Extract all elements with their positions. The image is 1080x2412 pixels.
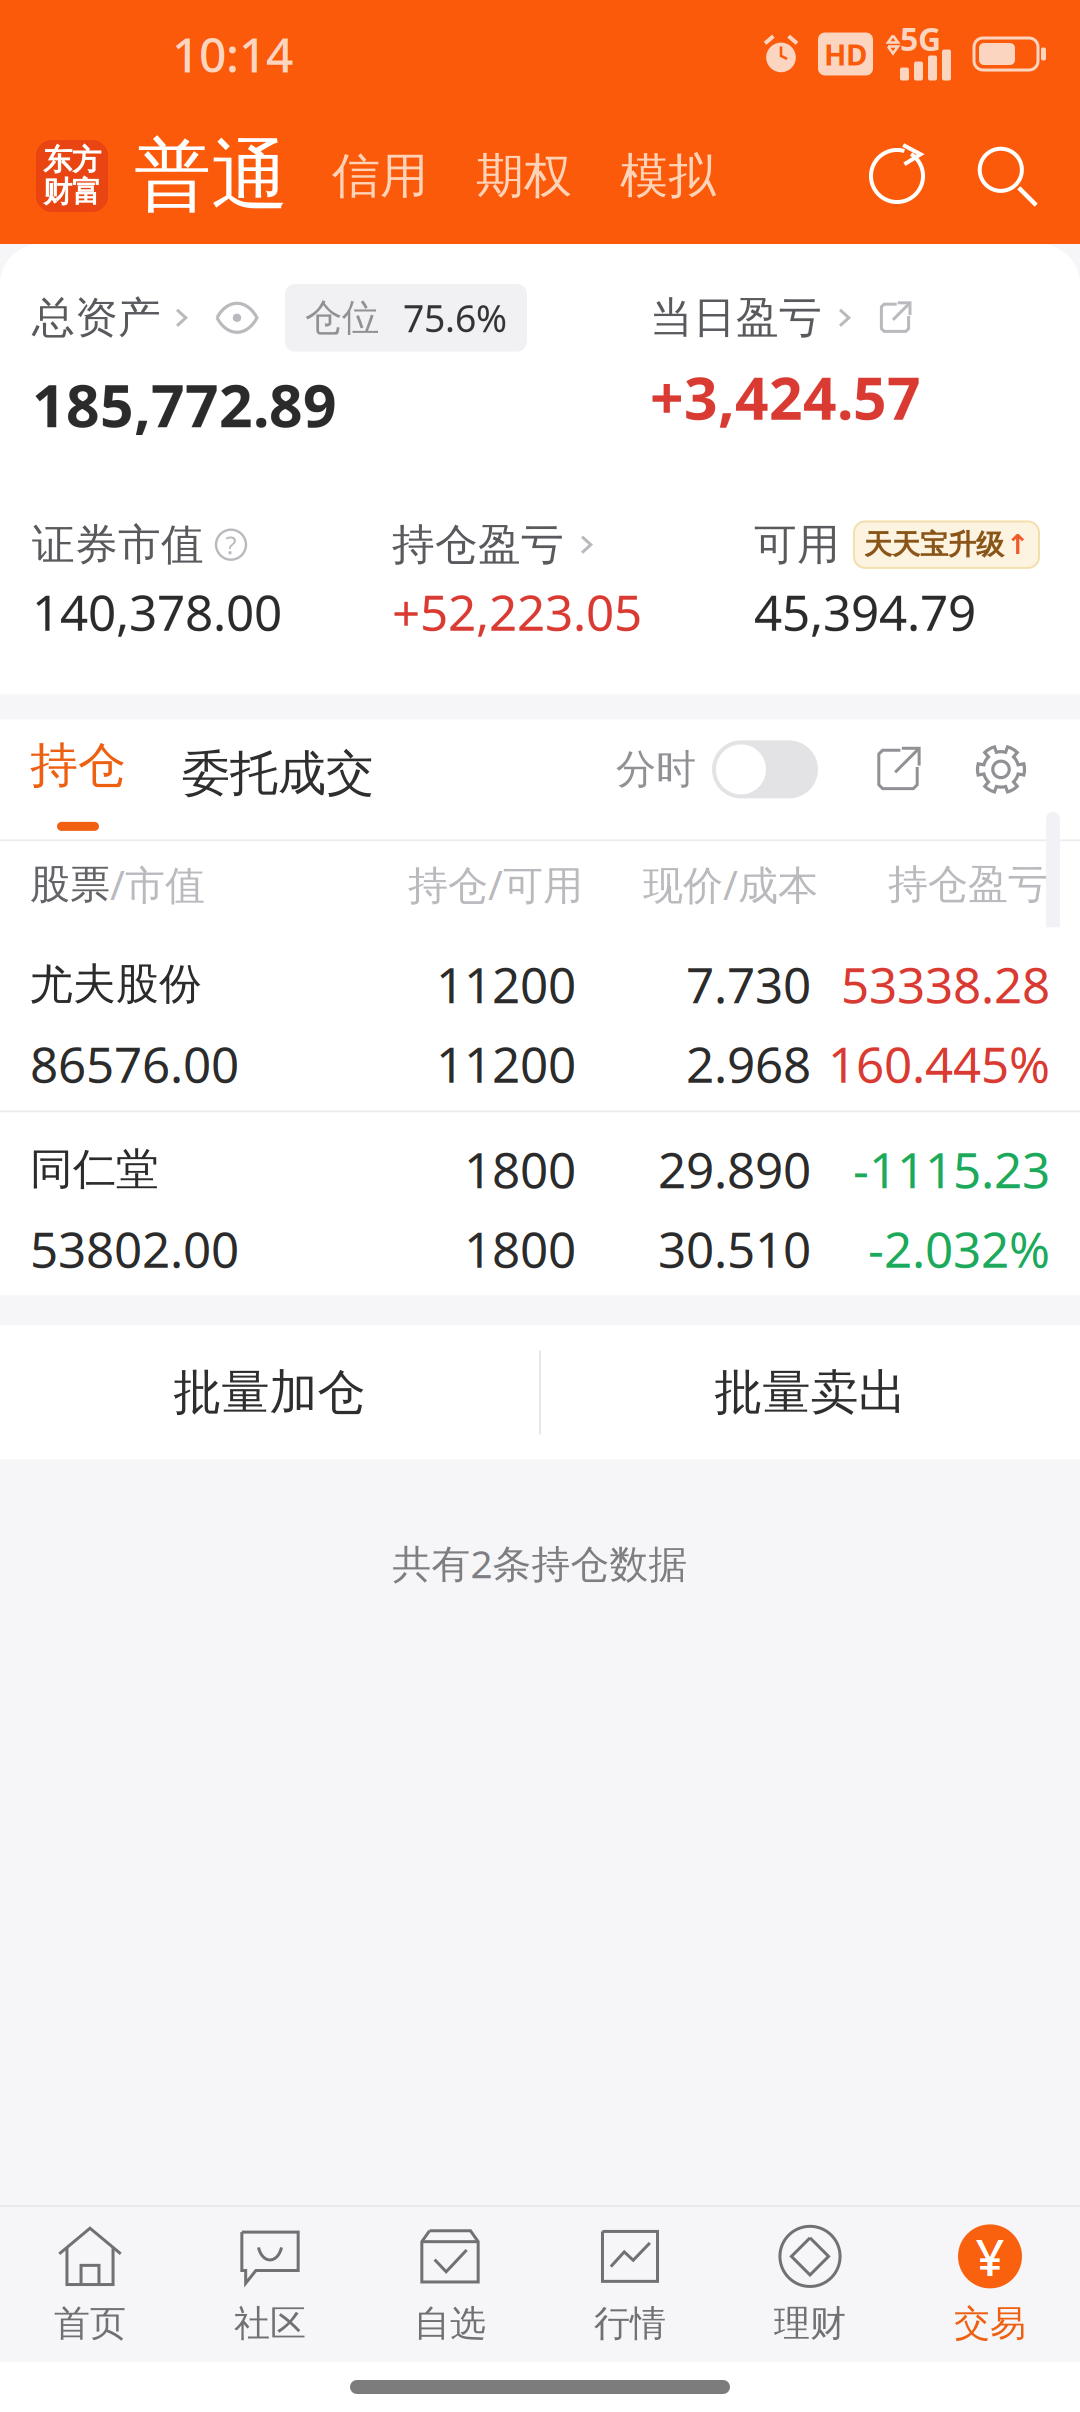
staticText: ? [225, 528, 236, 561]
button[interactable]: 持仓盈亏 [392, 518, 596, 571]
button[interactable]: 首页 [0, 2207, 180, 2362]
staticText: ¥ [975, 2223, 1004, 2290]
staticText: 持仓 [30, 736, 126, 795]
staticText: 理财 [774, 2301, 846, 2346]
staticText: 共有2条持仓数据 [392, 1537, 687, 1589]
staticText: 1800 [464, 1216, 576, 1281]
staticText: 期权 [476, 146, 572, 205]
staticText: 45,394.79 [754, 579, 976, 644]
staticText: 1800 [464, 1136, 576, 1202]
button[interactable]: 信用 [332, 146, 428, 205]
staticText: 信用 [332, 146, 428, 205]
button[interactable]: 普通 [134, 128, 288, 223]
staticText: 当日盈亏 [650, 292, 822, 344]
staticText: 天天宝升级 [864, 527, 1004, 562]
staticText: 140,378.00 [32, 579, 282, 644]
staticText: 29.890 [658, 1136, 811, 1202]
staticText: 现价/成本 [643, 858, 818, 911]
staticText: 行情 [594, 2301, 666, 2346]
button[interactable]: 同仁堂 [0, 1112, 1080, 1295]
button[interactable]: Refresh [866, 145, 928, 207]
staticText: 仓位 [305, 295, 379, 341]
staticText: 5G [900, 17, 941, 60]
staticText: 东方 [43, 142, 101, 178]
button[interactable]: Settings [976, 744, 1026, 794]
staticText: 7.730 [686, 951, 811, 1017]
staticText: 社区 [234, 2301, 306, 2346]
button[interactable]: Search [976, 145, 1038, 207]
button[interactable]: 批量加仓 [0, 1325, 539, 1459]
button[interactable]: 模拟 [620, 146, 716, 205]
staticText: 持仓盈亏 [392, 518, 564, 571]
button[interactable]: 总资产 [32, 284, 527, 352]
staticText: +52,223.05 [392, 579, 642, 644]
button[interactable]: 批量卖出 [541, 1325, 1080, 1459]
staticText: 自选 [414, 2301, 486, 2346]
button[interactable]: 行情 [540, 2207, 720, 2362]
button[interactable]: 天天宝升级 [854, 521, 1039, 568]
button[interactable]: 理财 [720, 2207, 900, 2362]
staticText: 股票 [30, 860, 110, 909]
staticText: -2.032% [868, 1216, 1050, 1281]
button[interactable]: 持仓 [30, 736, 126, 831]
staticText: 10:14 [172, 22, 293, 86]
staticText: 可用 [754, 518, 840, 571]
staticText: /市值 [110, 858, 205, 911]
staticText: 持仓盈亏 [888, 860, 1048, 909]
staticText: 53338.28 [841, 951, 1050, 1017]
staticText: 总资产 [32, 292, 161, 344]
staticText: 86576.00 [30, 1031, 239, 1096]
button[interactable]: Share [874, 745, 922, 793]
button[interactable]: 社区 [180, 2207, 360, 2362]
staticText: 11200 [436, 1031, 576, 1096]
button[interactable]: Toggle time-share chart [712, 740, 818, 798]
staticText: 75.6% [403, 293, 507, 343]
button[interactable]: 尤夫股份 [0, 927, 1080, 1110]
staticText: 批量加仓 [173, 1363, 365, 1422]
staticText: 证券市值 [32, 518, 204, 571]
staticText: 11200 [436, 951, 576, 1017]
button[interactable]: 期权 [476, 146, 572, 205]
staticText: 同仁堂 [30, 1143, 159, 1195]
button[interactable]: ¥ [900, 2207, 1080, 2362]
staticText: -1115.23 [853, 1136, 1050, 1202]
staticText: 批量卖出 [714, 1363, 906, 1422]
staticText: 53802.00 [30, 1216, 239, 1281]
staticText: HD [824, 34, 867, 73]
staticText: 交易 [954, 2301, 1026, 2346]
staticText: 持仓/可用 [408, 858, 583, 911]
staticText: 30.510 [658, 1216, 811, 1281]
staticText: 模拟 [620, 146, 716, 205]
staticText: 财富 [43, 174, 101, 210]
staticText: 185,772.89 [32, 366, 337, 443]
staticText: +3,424.57 [650, 358, 921, 436]
button[interactable]: 自选 [360, 2207, 540, 2362]
staticText: 普通 [134, 128, 288, 223]
button[interactable]: 委托成交 [182, 744, 374, 826]
button[interactable]: 当日盈亏 [650, 292, 912, 344]
staticText: 委托成交 [182, 744, 374, 803]
staticText: 首页 [54, 2301, 126, 2346]
staticText: 尤夫股份 [30, 958, 202, 1010]
staticText: 160.445% [828, 1031, 1050, 1096]
staticText: ↑ [1006, 529, 1029, 561]
staticText: 2.968 [686, 1031, 811, 1096]
staticText: 分时 [616, 745, 696, 794]
